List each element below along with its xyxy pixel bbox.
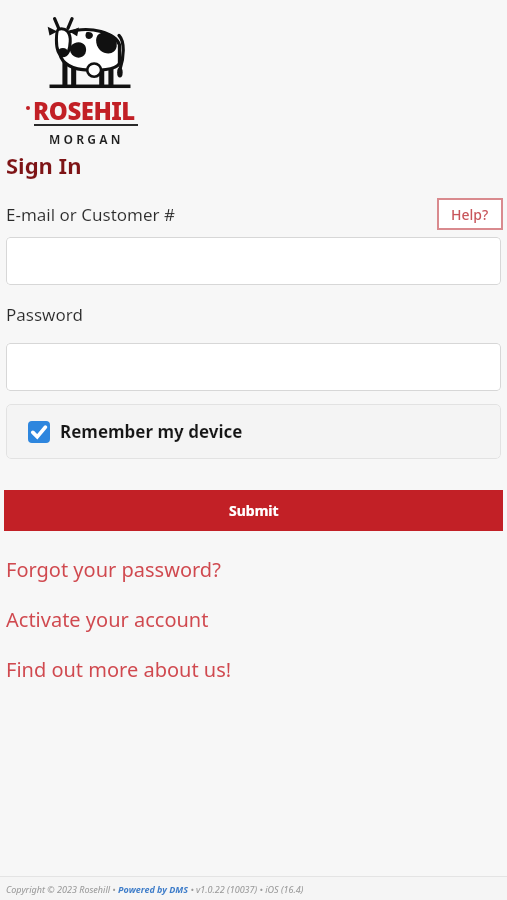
staticText: Forgot your password? — [6, 556, 221, 583]
button[interactable]: Find out more about us! — [0, 644, 507, 694]
button[interactable] — [6, 343, 501, 391]
button[interactable]: Forgot your password? — [0, 544, 507, 594]
button[interactable]: Submit — [4, 490, 503, 531]
staticText: Submit — [229, 501, 279, 520]
button[interactable]: Help? — [437, 198, 503, 230]
staticText: Remember my device — [60, 420, 243, 443]
button[interactable] — [6, 237, 501, 285]
button[interactable]: Remember my device — [6, 404, 501, 459]
staticText: Find out more about us! — [6, 656, 232, 683]
button[interactable]: Activate your account — [0, 594, 507, 644]
staticText: Copyright © 2023 Rosehill • Powered by D… — [6, 883, 304, 895]
other: Rosehill Morgan logo — [44, 12, 136, 90]
staticText: Activate your account — [6, 606, 209, 633]
staticText: Password — [6, 303, 83, 326]
staticText: ROSEHILL — [33, 94, 146, 122]
staticText: Help? — [451, 205, 489, 224]
staticText: E-mail or Customer # — [6, 203, 175, 226]
staticText: Sign In — [6, 150, 82, 180]
staticText: MORGAN — [49, 131, 124, 147]
